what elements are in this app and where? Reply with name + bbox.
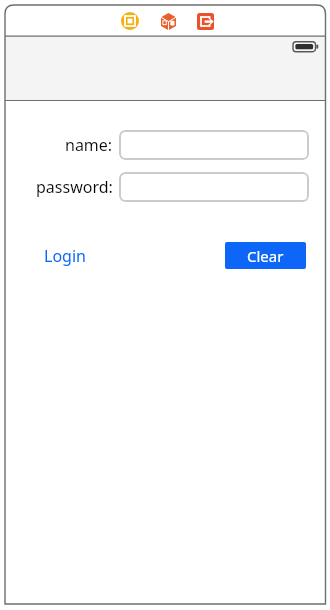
staticText: Clear <box>247 246 284 266</box>
button[interactable] <box>119 130 309 160</box>
button[interactable]: Login <box>42 242 88 269</box>
staticText: name: <box>65 134 113 156</box>
button[interactable]: Clear <box>225 242 306 269</box>
staticText: password: <box>36 176 113 198</box>
button[interactable] <box>119 172 309 202</box>
staticText: Login <box>44 245 86 267</box>
